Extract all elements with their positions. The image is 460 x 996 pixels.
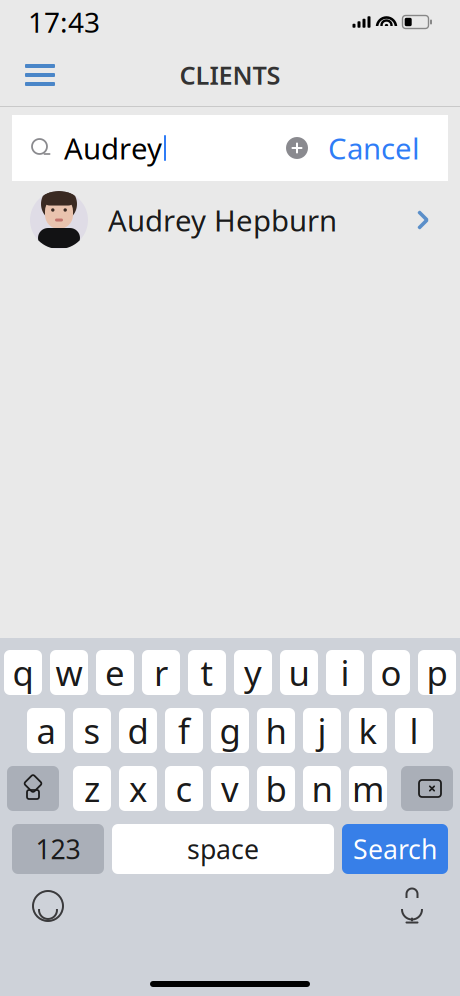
staticText: z: [84, 765, 100, 811]
button[interactable]: t: [188, 650, 226, 695]
staticText: t: [200, 649, 213, 695]
button[interactable]: x: [119, 766, 157, 811]
button[interactable]: Dictation: [386, 884, 438, 928]
staticText: i: [340, 649, 349, 695]
button[interactable]: Audrey Hepburn: [0, 181, 460, 259]
staticText: d: [127, 707, 148, 753]
staticText: v: [221, 765, 239, 811]
button[interactable]: h: [257, 708, 295, 753]
staticText: Audrey: [64, 128, 162, 167]
staticText: c: [175, 765, 192, 811]
staticText: l: [409, 707, 418, 753]
button[interactable]: Clear text: [276, 126, 318, 170]
staticText: Cancel: [328, 128, 420, 167]
button[interactable]: m: [349, 766, 387, 811]
staticText: q: [12, 649, 33, 695]
button[interactable]: n: [303, 766, 341, 811]
staticText: j: [317, 707, 326, 753]
button[interactable]: i: [326, 650, 364, 695]
button[interactable]: g: [211, 708, 249, 753]
staticText: g: [219, 707, 240, 753]
staticText: b: [265, 765, 286, 811]
staticText: m: [352, 765, 384, 811]
staticText: a: [36, 707, 55, 753]
button[interactable]: c: [165, 766, 203, 811]
staticText: CLIENTS: [179, 58, 280, 92]
staticText: o: [380, 649, 401, 695]
button[interactable]: a: [27, 708, 65, 753]
staticText: Search: [353, 831, 437, 867]
staticText: k: [358, 707, 377, 753]
staticText: h: [265, 707, 286, 753]
button[interactable]: Search: [342, 824, 448, 874]
staticText: e: [105, 649, 125, 695]
button[interactable]: Delete: [401, 766, 453, 811]
staticText: n: [311, 765, 332, 811]
staticText: w: [55, 649, 82, 695]
button[interactable]: 123: [12, 824, 104, 874]
button[interactable]: k: [349, 708, 387, 753]
button[interactable]: Shift: [7, 766, 59, 811]
button[interactable]: l: [395, 708, 433, 753]
button[interactable]: p: [418, 650, 456, 695]
staticText: Audrey Hepburn: [108, 200, 337, 239]
staticText: 17:43: [28, 3, 100, 41]
button[interactable]: s: [73, 708, 111, 753]
button[interactable]: u: [280, 650, 318, 695]
button[interactable]: Menu: [14, 53, 66, 97]
button[interactable]: v: [211, 766, 249, 811]
staticText: y: [244, 649, 262, 695]
button[interactable]: space: [112, 824, 334, 874]
staticText: f: [178, 707, 190, 753]
button[interactable]: d: [119, 708, 157, 753]
button[interactable]: q: [4, 650, 42, 695]
button[interactable]: r: [142, 650, 180, 695]
button[interactable]: f: [165, 708, 203, 753]
button[interactable]: j: [303, 708, 341, 753]
staticText: u: [288, 649, 309, 695]
button[interactable]: Emoji keyboard: [22, 884, 74, 928]
button[interactable]: y: [234, 650, 272, 695]
button[interactable]: e: [96, 650, 134, 695]
staticText: 123: [35, 831, 80, 867]
staticText: space: [187, 831, 259, 867]
button[interactable]: b: [257, 766, 295, 811]
button[interactable]: o: [372, 650, 410, 695]
staticText: r: [154, 649, 168, 695]
button[interactable]: z: [73, 766, 111, 811]
staticText: s: [83, 707, 100, 753]
staticText: x: [129, 765, 147, 811]
button[interactable]: Cancel: [318, 126, 430, 170]
staticText: p: [426, 649, 447, 695]
button[interactable]: w: [50, 650, 88, 695]
